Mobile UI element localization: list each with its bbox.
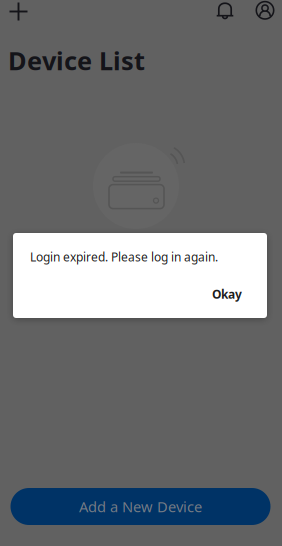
staticText: Device List (8, 44, 145, 77)
button[interactable]: Okay (204, 281, 250, 307)
staticText: Login expired. Please log in again. (30, 249, 218, 265)
button[interactable]: Notifications (212, 0, 238, 24)
button[interactable]: Account (252, 0, 278, 23)
button[interactable]: Add device (3, 0, 33, 24)
staticText: Add a New Device (79, 497, 202, 516)
staticText: Okay (212, 286, 242, 302)
button[interactable]: Add a New Device (10, 488, 270, 525)
